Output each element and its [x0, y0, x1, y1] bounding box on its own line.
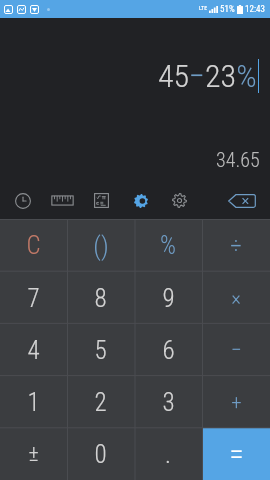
button[interactable]: Backspace: [214, 184, 270, 217]
button[interactable]: (): [67, 219, 134, 272]
staticText: LTE: [199, 4, 208, 11]
button[interactable]: Formulas: [83, 184, 120, 217]
staticText: 0: [94, 440, 107, 469]
button[interactable]: History: [4, 184, 41, 217]
button[interactable]: Settings: [161, 184, 198, 217]
staticText: (): [93, 231, 109, 261]
staticText: 5: [94, 336, 107, 365]
staticText: −: [231, 337, 242, 363]
staticText: .: [165, 440, 171, 469]
staticText: 4: [27, 336, 40, 365]
button[interactable]: ±: [0, 428, 67, 480]
button[interactable]: .: [134, 428, 202, 480]
staticText: 8: [94, 284, 107, 313]
staticText: ×: [231, 286, 241, 311]
button[interactable]: =: [202, 428, 270, 480]
button[interactable]: 7: [0, 272, 67, 324]
staticText: C: [26, 231, 41, 260]
staticText: 12:43: [245, 4, 265, 15]
staticText: 51%: [220, 4, 235, 15]
button[interactable]: ×: [202, 272, 270, 324]
staticText: 45−23%: [158, 57, 257, 95]
button[interactable]: Unit converter: [44, 184, 81, 217]
button[interactable]: 4: [0, 324, 67, 376]
staticText: +: [231, 390, 242, 415]
staticText: ÷: [230, 232, 242, 259]
button[interactable]: %: [134, 219, 202, 272]
staticText: 2: [94, 388, 107, 417]
button[interactable]: 6: [134, 324, 202, 376]
button[interactable]: +: [202, 376, 270, 428]
staticText: 9: [162, 284, 175, 313]
button[interactable]: ÷: [202, 219, 270, 272]
staticText: 34.65: [216, 148, 260, 171]
staticText: 7: [27, 284, 40, 313]
staticText: ±: [28, 441, 39, 467]
button[interactable]: 1: [0, 376, 67, 428]
button[interactable]: C: [0, 219, 67, 272]
button[interactable]: Theme: [122, 184, 159, 217]
staticText: %: [160, 231, 176, 260]
button[interactable]: 9: [134, 272, 202, 324]
staticText: =: [229, 437, 244, 471]
staticText: 6: [162, 336, 175, 365]
button[interactable]: −: [202, 324, 270, 376]
button[interactable]: 5: [67, 324, 134, 376]
staticText: 1: [27, 388, 40, 417]
button[interactable]: 2: [67, 376, 134, 428]
button[interactable]: 3: [134, 376, 202, 428]
button[interactable]: 0: [67, 428, 134, 480]
button[interactable]: 8: [67, 272, 134, 324]
staticText: 3: [162, 388, 175, 417]
